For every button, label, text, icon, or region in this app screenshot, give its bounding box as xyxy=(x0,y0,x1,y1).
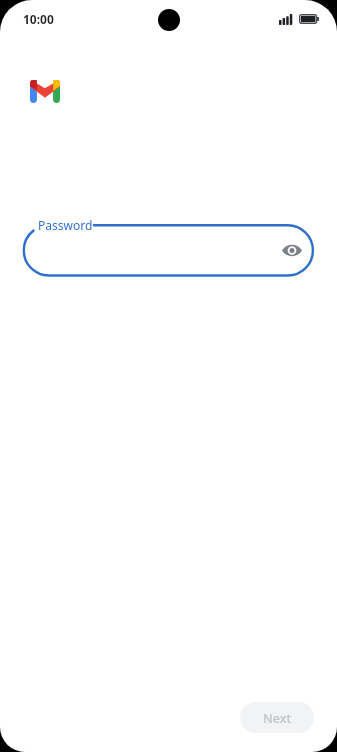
staticText: Password xyxy=(38,217,93,233)
staticText: 10:00 xyxy=(23,11,54,27)
staticText: Next xyxy=(263,710,292,727)
button[interactable]: Next xyxy=(240,702,314,733)
button[interactable]: Password xyxy=(23,224,314,276)
button[interactable]: Show password xyxy=(278,236,306,264)
